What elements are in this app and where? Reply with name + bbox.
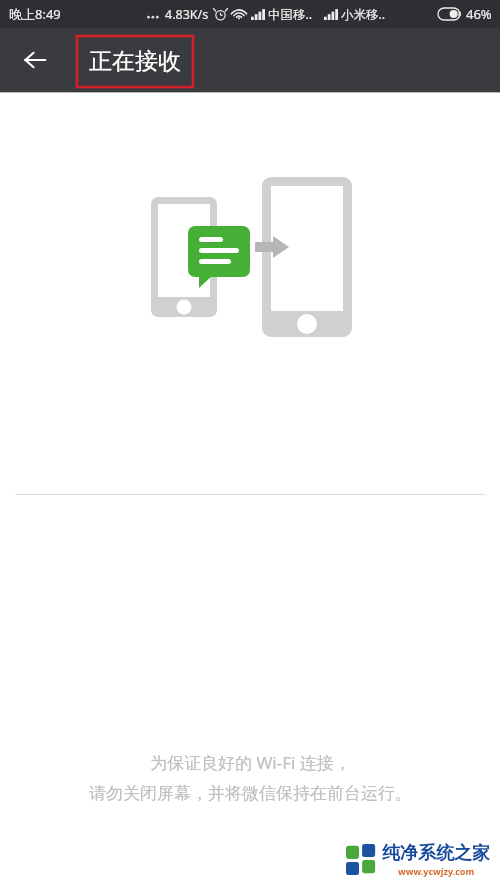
staticText: www.ycwjzy.com <box>398 865 475 877</box>
button[interactable]: 正在接收 <box>77 36 193 87</box>
staticText: 4.83K/s <box>165 6 209 23</box>
staticText: 请勿关闭屏幕，并将微信保持在前台运行。 <box>89 783 412 804</box>
staticText: 纯净系统之家 <box>382 842 490 865</box>
staticText: 为保证良好的 Wi-Fi 连接， <box>150 751 351 774</box>
staticText: 46% <box>466 5 492 23</box>
staticText: 中国移.. <box>268 6 313 23</box>
staticText: 小米移.. <box>341 6 386 23</box>
staticText: 正在接收 <box>89 47 181 76</box>
staticText: 晚上8:49 <box>9 5 61 23</box>
button[interactable]: Back <box>12 37 58 83</box>
